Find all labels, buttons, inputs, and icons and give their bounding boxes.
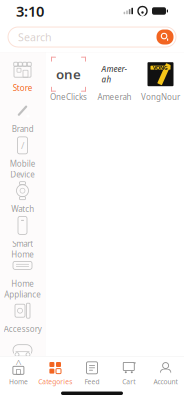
- button[interactable]: Watch: [0, 177, 45, 217]
- staticText: Brand: [11, 124, 33, 134]
- staticText: Feed: [84, 377, 99, 386]
- staticText: Cart: [122, 377, 135, 386]
- staticText: Home: [9, 377, 28, 386]
- staticText: Car: [16, 364, 28, 374]
- staticText: VONG: [153, 64, 168, 71]
- staticText: Ameerah: [101, 64, 127, 85]
- staticText: OneClicks: [50, 92, 87, 102]
- staticText: Categories: [38, 377, 72, 386]
- staticText: ^: [15, 357, 21, 371]
- staticText: Account: [154, 377, 178, 386]
- button[interactable]: Search: [0, 22, 184, 52]
- button[interactable]: Cart: [110, 358, 147, 388]
- staticText: Store: [12, 83, 32, 93]
- button[interactable]: one: [45, 58, 91, 104]
- staticText: Ameerah: [97, 92, 131, 102]
- staticText: Mobile Device: [9, 158, 35, 180]
- button[interactable]: Brand: [0, 97, 45, 137]
- staticText: Search: [18, 30, 52, 44]
- button[interactable]: Car: [0, 337, 45, 377]
- button[interactable]: Store: [0, 55, 45, 97]
- button[interactable]: ^: [0, 358, 37, 388]
- button[interactable]: Accessory: [0, 297, 45, 337]
- staticText: /: [21, 139, 24, 152]
- button[interactable]: Ameerah: [91, 58, 137, 104]
- staticText: Home Appliance: [4, 278, 41, 300]
- button[interactable]: Feed: [74, 358, 110, 388]
- staticText: Smart Home: [11, 238, 34, 260]
- button[interactable]: Home Appliance: [0, 257, 45, 297]
- staticText: Accessory: [3, 324, 41, 334]
- staticText: Watch: [11, 204, 34, 214]
- button[interactable]: Smart Home: [0, 217, 45, 257]
- staticText: 3:10: [16, 1, 44, 21]
- button[interactable]: Categories: [37, 358, 74, 388]
- staticText: VongNour: [141, 92, 180, 102]
- button[interactable]: VONG: [137, 58, 183, 104]
- staticText: one: [56, 65, 81, 83]
- button[interactable]: Account: [147, 358, 184, 388]
- button[interactable]: /: [0, 137, 45, 177]
